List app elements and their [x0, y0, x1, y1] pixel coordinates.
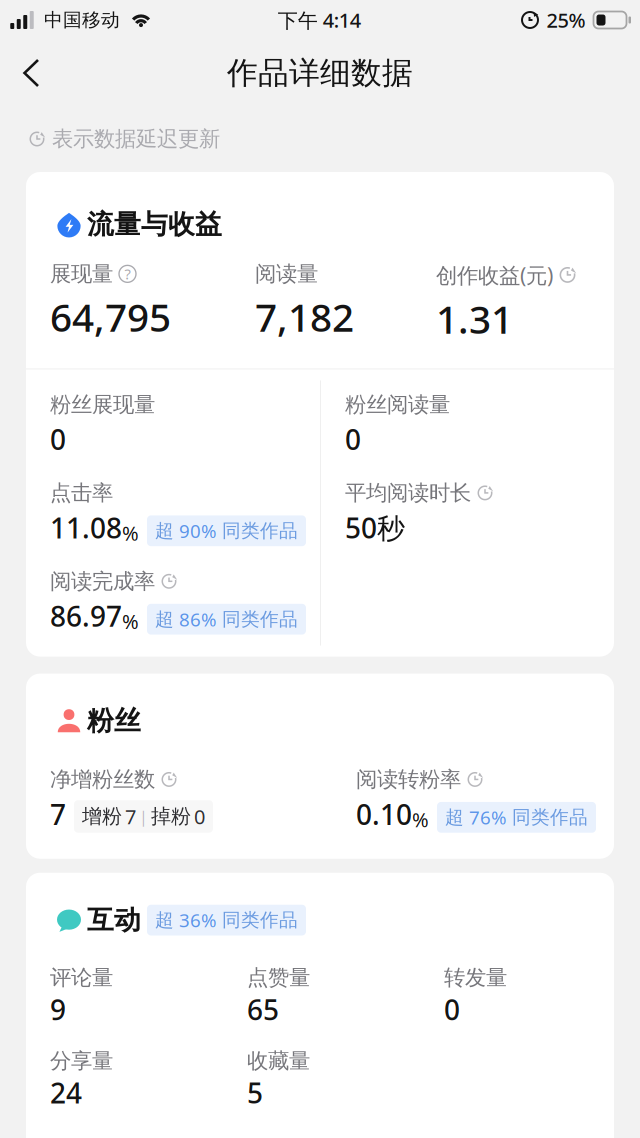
staticText: 0 — [345, 421, 361, 458]
staticText: 0 — [444, 991, 460, 1028]
staticText: 同类作品 — [222, 909, 298, 931]
staticText: 76% — [469, 805, 507, 830]
staticText: 粉丝 — [87, 705, 141, 737]
staticText: 增粉 — [82, 804, 122, 829]
staticText: 86% — [179, 607, 217, 632]
staticText: 净增粉丝数 — [50, 766, 155, 792]
staticText: 中国移动 — [44, 8, 120, 31]
staticText: 9 — [50, 991, 66, 1028]
staticText: % — [122, 520, 139, 546]
staticText: 7 — [50, 795, 66, 833]
staticText: 粉丝阅读量 — [345, 391, 450, 418]
staticText: 平均阅读时长 — [345, 480, 471, 506]
staticText: 分享量 — [50, 1048, 113, 1074]
staticText: 50秒 — [345, 509, 405, 546]
staticText: 创作收益(元) — [436, 261, 553, 289]
staticText: 流量与收益 — [87, 208, 222, 241]
staticText: 评论量 — [50, 964, 113, 991]
staticText: % — [122, 608, 139, 635]
staticText: 超 — [155, 909, 174, 931]
staticText: | — [139, 806, 148, 827]
staticText: 25% — [546, 7, 585, 33]
staticText: 下午 4:14 — [278, 7, 361, 33]
staticText: 超 — [155, 519, 174, 542]
staticText: 超 — [155, 608, 174, 631]
staticText: 86.97 — [50, 597, 122, 635]
staticText: 作品详细数据 — [227, 54, 413, 92]
staticText: 7,182 — [255, 291, 354, 342]
staticText: 65 — [247, 991, 279, 1028]
staticText: 同类作品 — [222, 608, 298, 631]
staticText: 互动 — [87, 904, 141, 936]
staticText: 同类作品 — [222, 519, 298, 542]
staticText: 收藏量 — [247, 1048, 310, 1074]
staticText: 24 — [50, 1074, 82, 1111]
staticText: 超 — [445, 806, 464, 829]
button[interactable]: 返回 — [0, 46, 56, 99]
staticText: 0 — [194, 803, 205, 830]
staticText: 阅读转粉率 — [356, 766, 461, 792]
staticText: 36% — [179, 908, 217, 932]
staticText: 展现量 — [50, 261, 113, 287]
staticText: 粉丝展现量 — [50, 391, 155, 418]
staticText: 阅读量 — [255, 261, 318, 287]
staticText: 0 — [50, 421, 66, 458]
staticText: 11.08 — [50, 509, 122, 546]
staticText: 同类作品 — [512, 806, 588, 829]
staticText: 点赞量 — [247, 964, 310, 991]
staticText: 90% — [179, 518, 217, 543]
staticText: 掉粉 — [151, 804, 191, 829]
staticText: 转发量 — [444, 964, 507, 991]
staticText: 7 — [125, 803, 136, 830]
staticText: 64,795 — [50, 291, 171, 342]
staticText: 表示数据延迟更新 — [52, 126, 220, 152]
staticText: 点击率 — [50, 480, 113, 506]
staticText: 1.31 — [436, 293, 513, 344]
staticText: ? — [124, 264, 130, 284]
staticText: 0.10 — [356, 795, 412, 833]
staticText: 5 — [247, 1074, 263, 1111]
staticText: 阅读完成率 — [50, 568, 155, 594]
staticText: % — [412, 806, 429, 833]
